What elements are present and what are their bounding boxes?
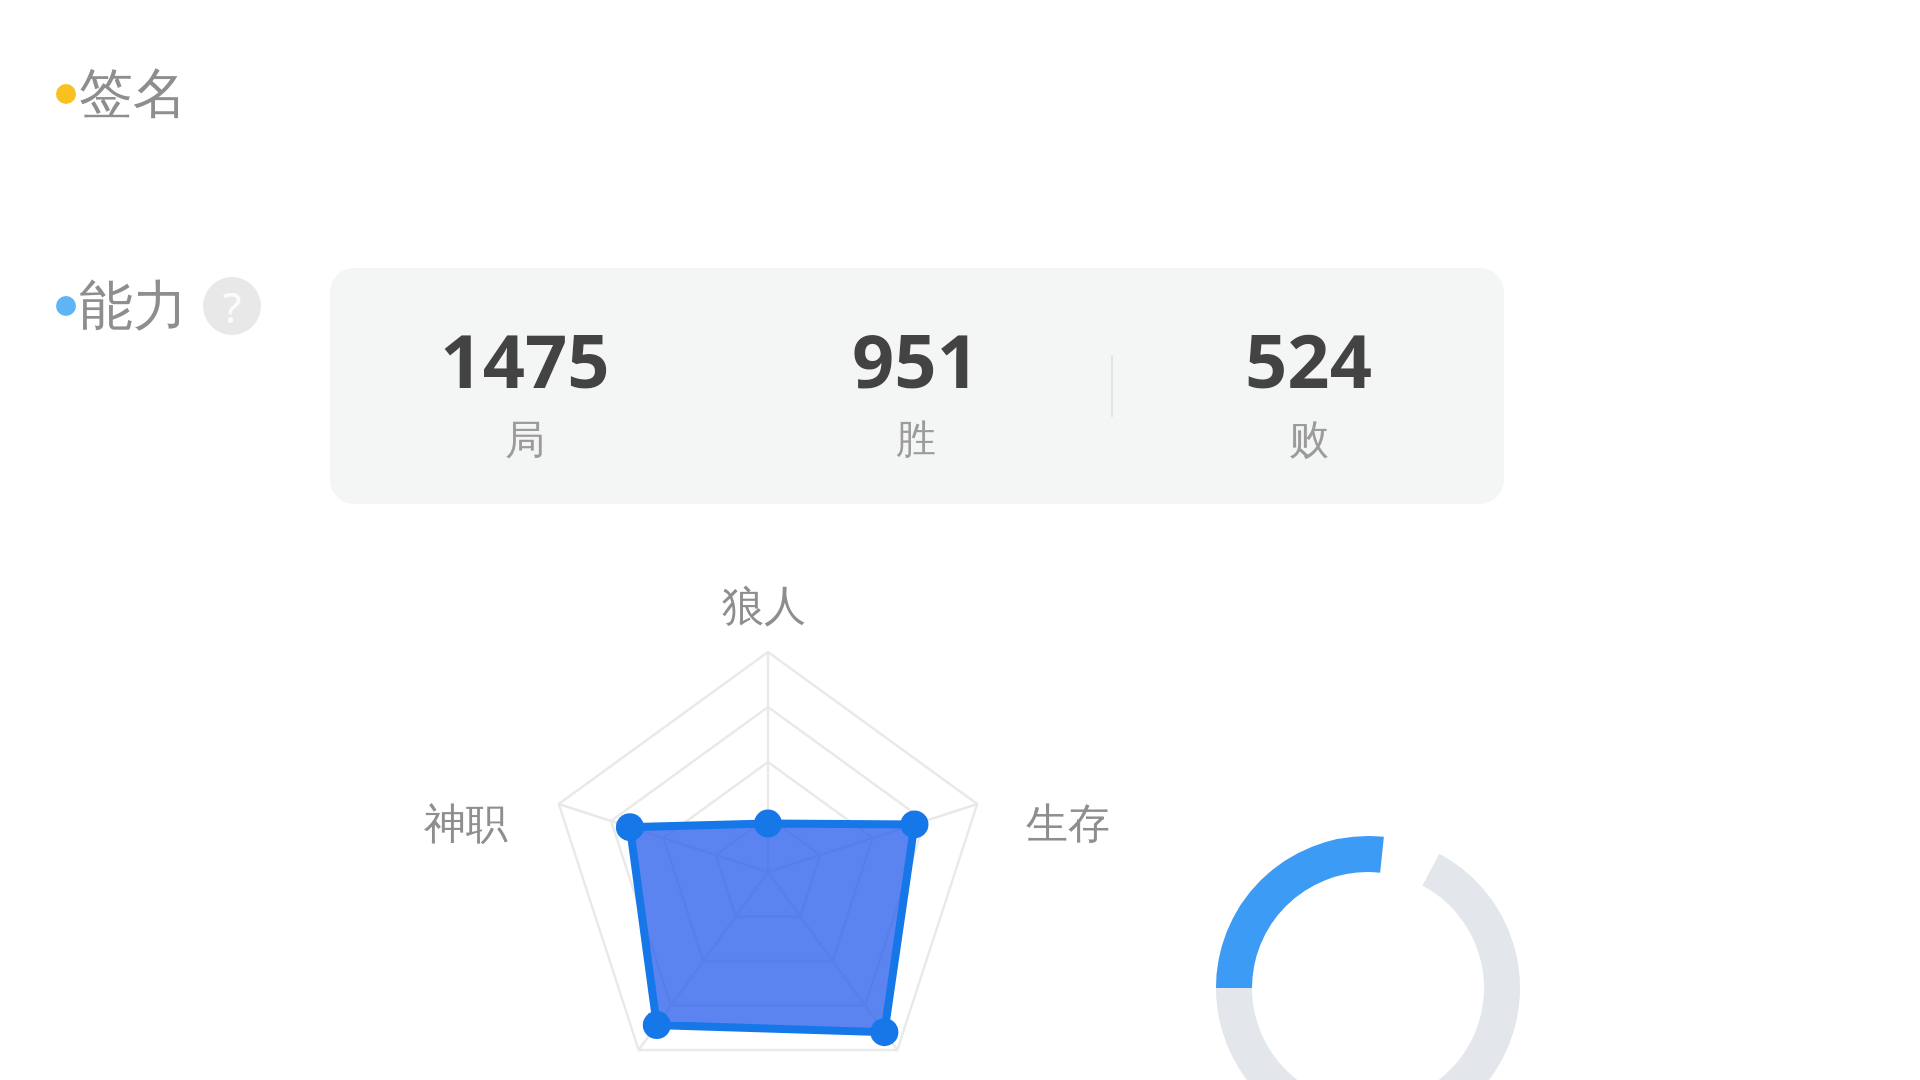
staticText: 524 bbox=[1245, 309, 1372, 410]
staticText: 神职 bbox=[424, 798, 508, 851]
button[interactable]: 1475 bbox=[330, 268, 720, 504]
staticText: 1475 bbox=[440, 309, 610, 410]
staticText: ? bbox=[223, 278, 242, 335]
staticText: 951 bbox=[852, 309, 979, 410]
button[interactable]: 能力 bbox=[52, 264, 265, 348]
button[interactable]: 951 bbox=[720, 268, 1111, 504]
button[interactable]: 签名 bbox=[52, 52, 191, 136]
button[interactable]: 524 bbox=[1113, 268, 1504, 504]
staticText: 局 bbox=[505, 414, 545, 464]
staticText: 胜 bbox=[896, 414, 936, 464]
staticText: 败 bbox=[1289, 414, 1329, 464]
staticText: 签名 bbox=[79, 60, 187, 128]
staticText: 能力 bbox=[79, 272, 187, 340]
button[interactable]: 1475 bbox=[330, 268, 1504, 504]
button[interactable]: 能力说明 bbox=[203, 277, 261, 335]
staticText: 狼人 bbox=[722, 580, 806, 633]
staticText: 生存 bbox=[1026, 798, 1110, 851]
